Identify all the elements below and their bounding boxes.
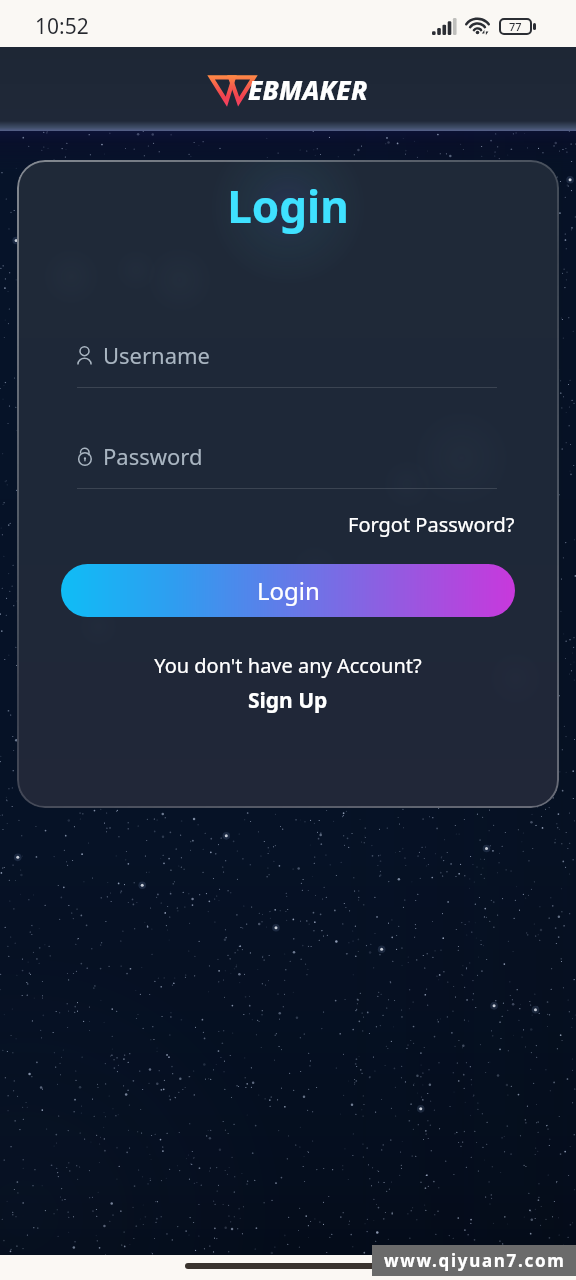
staticText: Forgot Password?: [348, 511, 515, 538]
staticText: 10:52: [35, 12, 89, 41]
staticText: Login: [17, 176, 559, 236]
staticText: Username: [103, 340, 211, 370]
staticText: Login: [257, 574, 320, 607]
button[interactable]: Forgot Password?: [348, 511, 515, 538]
staticText: Password: [103, 441, 203, 471]
staticText: www.qiyuan7.com: [384, 1249, 566, 1272]
button[interactable]: Login: [61, 564, 515, 617]
staticText: Sign Up: [248, 686, 328, 715]
staticText: EBMAKER: [248, 72, 368, 107]
staticText: 77: [509, 19, 522, 34]
staticText: You don't have any Account?: [17, 652, 559, 679]
button[interactable]: Sign Up: [17, 686, 559, 715]
